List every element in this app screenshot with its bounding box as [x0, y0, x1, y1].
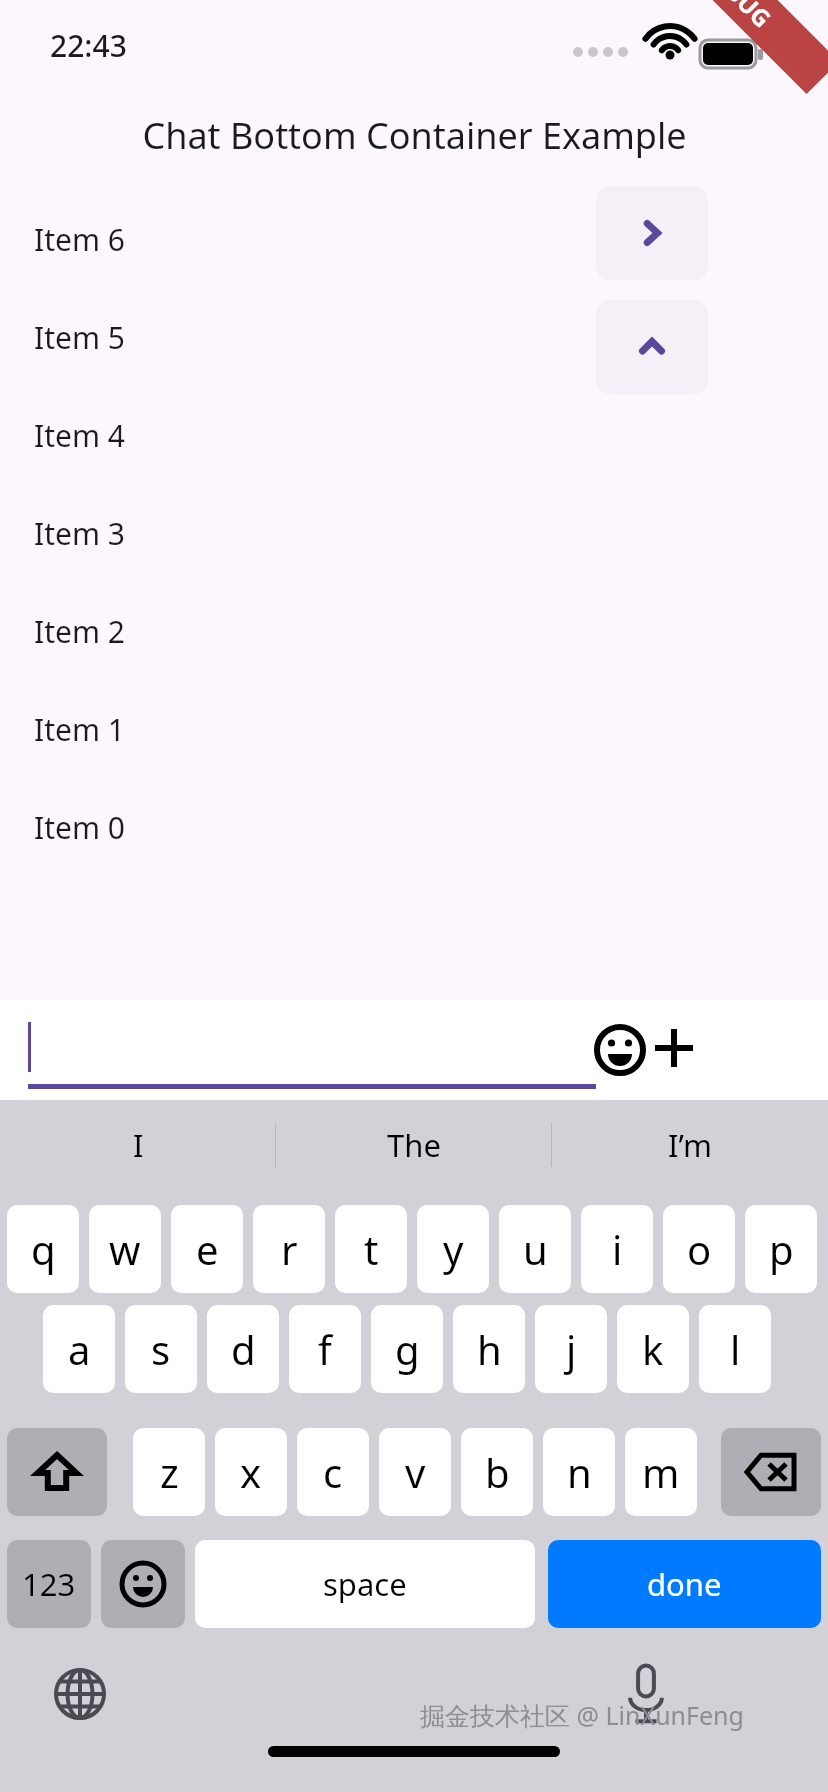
- staticText: q: [31, 1222, 56, 1276]
- staticText: h: [477, 1322, 502, 1376]
- button[interactable]: Scroll right: [596, 186, 708, 280]
- button[interactable]: More options: [648, 1022, 700, 1074]
- button[interactable]: Scroll to top: [596, 300, 708, 394]
- staticText: done: [647, 1563, 722, 1605]
- staticText: Item 2: [34, 611, 125, 652]
- staticText: s: [151, 1322, 171, 1376]
- staticText: f: [318, 1322, 332, 1376]
- button[interactable]: f: [289, 1305, 361, 1393]
- staticText: space: [323, 1563, 407, 1605]
- button[interactable]: n: [543, 1428, 615, 1516]
- button[interactable]: w: [89, 1205, 161, 1293]
- staticText: v: [405, 1445, 426, 1499]
- button[interactable]: Item 3: [0, 484, 828, 582]
- button[interactable]: The: [276, 1100, 552, 1190]
- staticText: x: [240, 1445, 262, 1499]
- button[interactable]: Voice input: [614, 1656, 678, 1732]
- staticText: o: [687, 1222, 712, 1276]
- staticText: g: [395, 1322, 420, 1376]
- staticText: d: [231, 1322, 256, 1376]
- button[interactable]: Item 1: [0, 680, 828, 778]
- button[interactable]: y: [417, 1205, 489, 1293]
- staticText: m: [642, 1445, 680, 1499]
- staticText: Item 1: [34, 709, 125, 750]
- staticText: k: [642, 1322, 664, 1376]
- button[interactable]: q: [7, 1205, 79, 1293]
- staticText: e: [196, 1222, 219, 1276]
- button[interactable]: Shift: [7, 1428, 107, 1516]
- button[interactable]: j: [535, 1305, 607, 1393]
- button[interactable]: 123: [7, 1540, 91, 1628]
- button[interactable]: t: [335, 1205, 407, 1293]
- button[interactable]: b: [461, 1428, 533, 1516]
- staticText: Item 6: [34, 219, 125, 260]
- button[interactable]: l: [699, 1305, 771, 1393]
- button[interactable]: g: [371, 1305, 443, 1393]
- button[interactable]: k: [617, 1305, 689, 1393]
- button[interactable]: e: [171, 1205, 243, 1293]
- button[interactable]: Item 0: [0, 778, 828, 876]
- staticText: 掘金技术社区 @ LinXunFeng: [420, 1698, 744, 1732]
- button[interactable]: a: [43, 1305, 115, 1393]
- staticText: Item 5: [34, 317, 125, 358]
- button[interactable]: o: [663, 1205, 735, 1293]
- staticText: 22:43: [50, 25, 127, 66]
- staticText: Item 3: [34, 513, 125, 554]
- staticText: a: [68, 1322, 91, 1376]
- button[interactable]: m: [625, 1428, 697, 1516]
- staticText: Item 4: [34, 415, 125, 456]
- button[interactable]: r: [253, 1205, 325, 1293]
- staticText: The: [387, 1124, 441, 1166]
- button[interactable]: I: [0, 1100, 276, 1190]
- button[interactable]: i: [581, 1205, 653, 1293]
- button[interactable]: s: [125, 1305, 197, 1393]
- staticText: DEBUG: [697, 0, 779, 35]
- button[interactable]: Item 6: [0, 190, 828, 288]
- button[interactable]: Backspace: [721, 1428, 821, 1516]
- button[interactable]: h: [453, 1305, 525, 1393]
- button[interactable]: done: [548, 1540, 821, 1628]
- staticText: y: [443, 1222, 464, 1276]
- button[interactable]: Change keyboard language: [48, 1662, 112, 1726]
- staticText: j: [566, 1322, 577, 1376]
- staticText: r: [281, 1222, 298, 1276]
- staticText: Chat Bottom Container Example: [142, 111, 687, 160]
- staticText: i: [612, 1222, 623, 1276]
- button[interactable]: I’m: [552, 1100, 828, 1190]
- staticText: I: [133, 1124, 144, 1166]
- staticText: 123: [22, 1563, 76, 1605]
- button[interactable]: Emoji: [592, 1022, 648, 1078]
- button[interactable]: d: [207, 1305, 279, 1393]
- staticText: p: [769, 1222, 794, 1276]
- button[interactable]: v: [379, 1428, 451, 1516]
- staticText: c: [323, 1445, 343, 1499]
- staticText: I’m: [668, 1124, 712, 1166]
- staticText: t: [364, 1222, 379, 1276]
- button[interactable]: Item 5: [0, 288, 828, 386]
- staticText: n: [567, 1445, 592, 1499]
- staticText: w: [109, 1222, 141, 1276]
- staticText: u: [523, 1222, 548, 1276]
- staticText: z: [160, 1445, 179, 1499]
- button[interactable]: Item 4: [0, 386, 828, 484]
- button[interactable]: z: [133, 1428, 205, 1516]
- staticText: Item 0: [34, 807, 125, 848]
- button[interactable]: p: [745, 1205, 817, 1293]
- button[interactable]: c: [297, 1428, 369, 1516]
- staticText: b: [485, 1445, 510, 1499]
- button[interactable]: x: [215, 1428, 287, 1516]
- button[interactable]: space: [195, 1540, 535, 1628]
- staticText: l: [730, 1322, 741, 1376]
- button[interactable]: Emoji keyboard: [101, 1540, 185, 1628]
- button[interactable]: u: [499, 1205, 571, 1293]
- button[interactable]: Item 2: [0, 582, 828, 680]
